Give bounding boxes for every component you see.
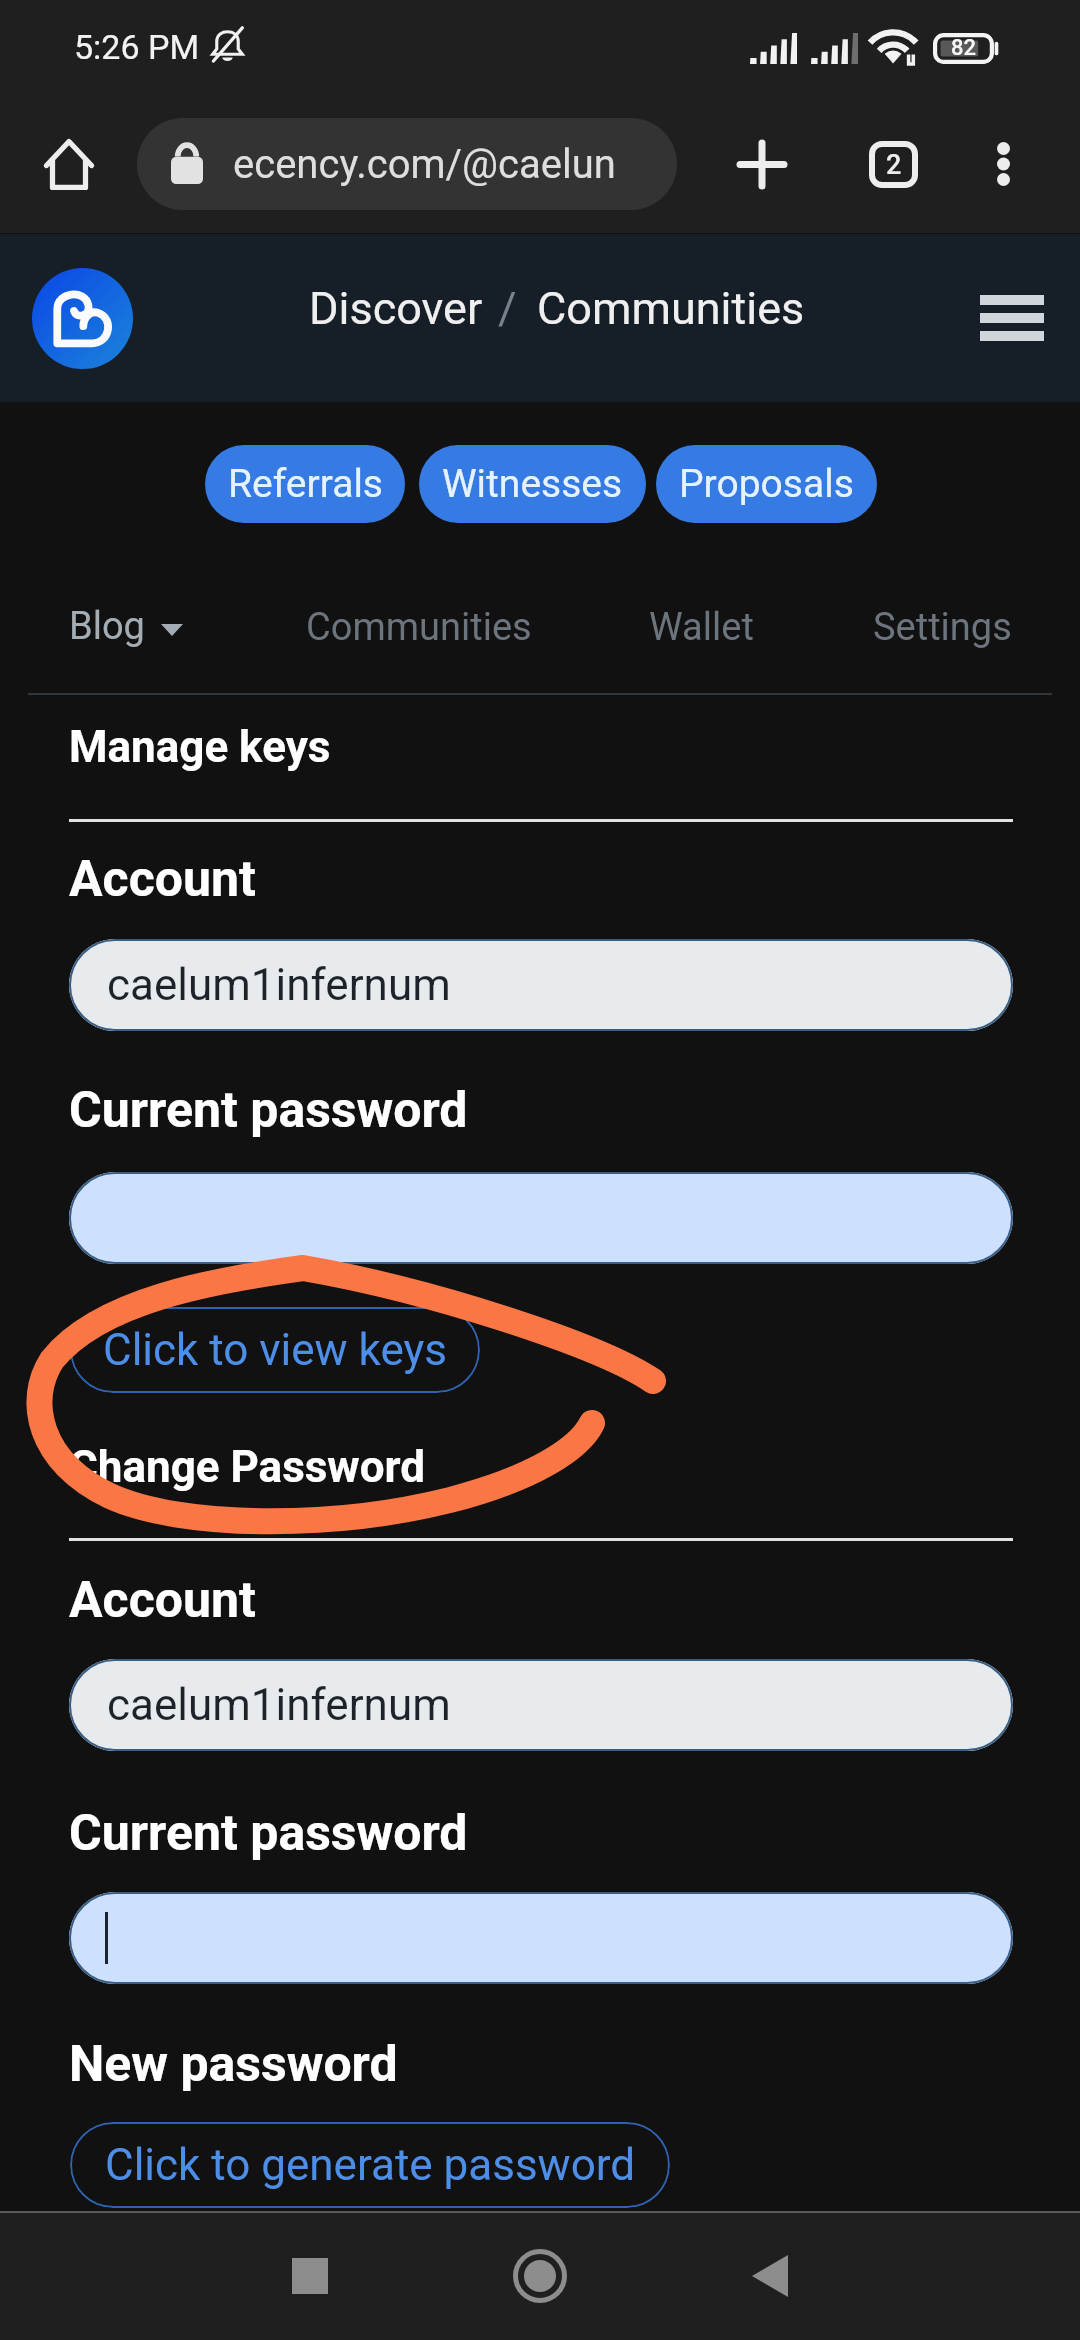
staticText: Click to generate password <box>105 2139 636 2191</box>
button[interactable]: Click to generate password <box>70 2122 670 2208</box>
staticText: caelum1infernum <box>107 959 451 1011</box>
staticText: Change Password <box>69 1441 425 1493</box>
button[interactable]: Witnesses <box>419 445 646 523</box>
button[interactable]: New tab <box>722 124 802 204</box>
button[interactable]: caelum1infernum <box>69 939 1013 1031</box>
button[interactable]: Recents <box>255 2221 365 2331</box>
button[interactable]: Blog <box>60 594 190 658</box>
staticText: caelum1infernum <box>107 1679 451 1731</box>
staticText: Current password <box>69 1804 468 1863</box>
staticText: Blog <box>69 604 145 649</box>
staticText: Witnesses <box>442 461 623 507</box>
staticText: 5:26 PM <box>74 27 200 67</box>
staticText: Click to view keys <box>103 1324 448 1376</box>
button[interactable]: Tabs <box>853 124 933 204</box>
staticText: / <box>498 282 517 335</box>
button[interactable]: caelum1infernum <box>69 1659 1013 1751</box>
button[interactable]: Proposals <box>656 445 877 523</box>
staticText: New password <box>69 2035 398 2094</box>
button[interactable]: Communities <box>537 282 805 335</box>
staticText: Account <box>69 1571 256 1630</box>
staticText: Current password <box>69 1081 468 1140</box>
button[interactable] <box>69 1172 1013 1264</box>
button[interactable]: Click to view keys <box>70 1307 480 1393</box>
button[interactable]: ecency.com/@caelun <box>137 118 677 210</box>
staticText: 82 <box>951 35 977 61</box>
button[interactable]: Communities <box>306 605 532 650</box>
button[interactable]: Settings <box>873 605 1012 650</box>
staticText: ecency.com/@caelun <box>233 141 616 188</box>
button[interactable]: Referrals <box>205 445 405 523</box>
staticText: 2 <box>886 149 902 181</box>
button[interactable]: Ecency home <box>32 268 133 369</box>
button[interactable]: Home <box>485 2221 595 2331</box>
button[interactable]: Wallet <box>649 605 754 650</box>
button[interactable]: Discover <box>309 282 483 335</box>
button[interactable]: Home <box>32 127 106 201</box>
staticText: Referrals <box>228 461 383 507</box>
button[interactable]: Back <box>715 2221 825 2331</box>
staticText: Manage keys <box>69 721 331 773</box>
button[interactable]: More options <box>963 124 1043 204</box>
button[interactable]: Menu <box>966 273 1058 363</box>
staticText: Proposals <box>679 461 854 507</box>
button[interactable] <box>69 1892 1013 1984</box>
staticText: Account <box>69 850 256 909</box>
